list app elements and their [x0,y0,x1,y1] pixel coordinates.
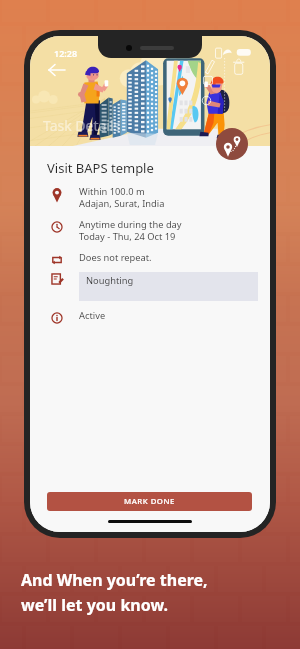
staticText: we’ll let you know. [21,594,168,616]
button[interactable]: Repeat [50,253,64,267]
staticText: 12:28 [54,47,78,59]
staticText: Active [79,309,106,322]
button[interactable]: Navigate [216,128,248,160]
staticText: Task Details [43,116,121,135]
staticText: Today - Thu, 24 Oct 19 [79,230,176,243]
button[interactable]: Note [50,272,64,286]
button[interactable]: Noughting [79,272,258,301]
staticText: Noughting [86,274,134,287]
staticText: Visit BAPS temple [47,159,154,177]
staticText: Does not repeat. [79,251,152,264]
button[interactable]: Time [50,220,64,234]
staticText: Within 100.0 m [79,185,145,198]
staticText: Adajan, Surat, India [79,197,165,210]
button[interactable]: MARK DONE [47,492,252,511]
staticText: MARK DONE [124,496,175,507]
button[interactable]: Location [50,187,64,201]
staticText: And When you’re there, [21,569,208,591]
button[interactable]: Status [50,311,64,325]
button[interactable]: Back [47,60,67,80]
staticText: Anytime during the day [79,218,182,231]
